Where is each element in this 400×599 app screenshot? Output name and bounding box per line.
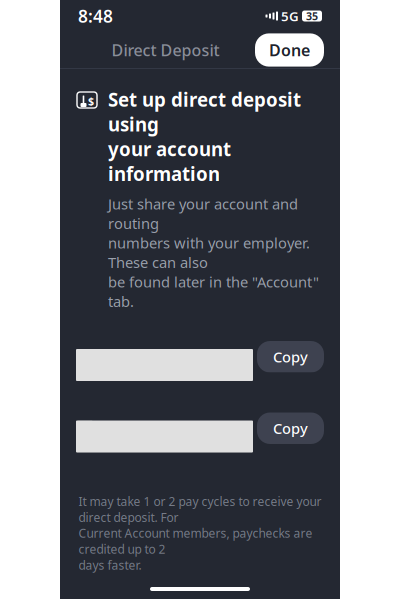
staticText: 35 — [306, 9, 318, 23]
staticText: Direct Deposit — [111, 39, 219, 61]
staticText: Just share your account and routing numb… — [108, 194, 319, 311]
staticText: Account Number — [104, 418, 235, 439]
staticText: It may take 1 or 2 pay cycles to receive… — [78, 493, 321, 573]
staticText: Set up direct deposit using your account… — [108, 87, 301, 186]
button[interactable]: Copy — [257, 412, 324, 444]
staticText: $ — [88, 94, 94, 108]
staticText: Done — [269, 39, 310, 61]
staticText: 8:48 — [78, 4, 113, 27]
button[interactable]: Done — [255, 33, 324, 67]
staticText: Copy — [273, 347, 308, 366]
staticText: Routing Number — [104, 346, 233, 367]
staticText: 5G — [281, 7, 299, 25]
staticText: Copy — [273, 418, 308, 438]
button[interactable]: Copy — [257, 341, 324, 372]
